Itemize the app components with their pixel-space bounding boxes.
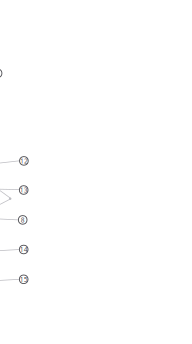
- staticText: 12: [20, 156, 28, 165]
- staticText: 8: [21, 215, 25, 224]
- button[interactable]: Callout 14: [19, 245, 28, 254]
- staticText: 15: [20, 275, 28, 284]
- button[interactable]: Callout 11: [0, 69, 2, 78]
- button[interactable]: Callout 15: [19, 275, 28, 284]
- button[interactable]: Callout 12: [20, 157, 28, 165]
- button[interactable]: Callout 13: [19, 186, 28, 194]
- button[interactable]: Callout 8: [18, 216, 27, 224]
- staticText: 13: [20, 186, 28, 194]
- staticText: 14: [20, 245, 28, 254]
